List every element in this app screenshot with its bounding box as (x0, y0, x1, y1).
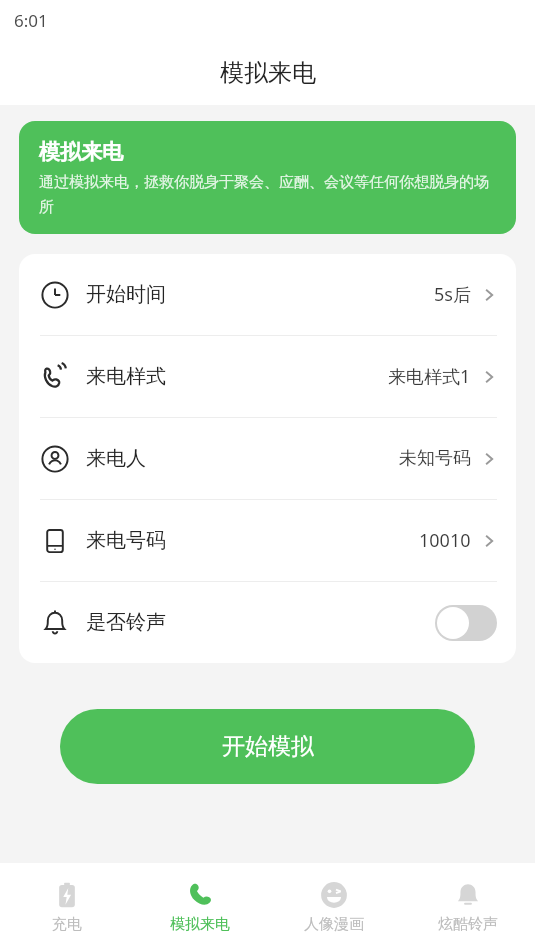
staticText: 炫酷铃声 (438, 915, 498, 934)
staticText: 人像漫画 (304, 915, 364, 934)
button[interactable]: 模拟来电 (19, 121, 516, 234)
button[interactable]: 来电人 (19, 418, 516, 499)
staticText: 是否铃声 (86, 610, 166, 635)
staticText: 5s后 (434, 282, 471, 307)
staticText: 10010 (419, 528, 471, 553)
staticText: 来电号码 (86, 528, 166, 553)
staticText: 开始模拟 (222, 732, 314, 761)
button[interactable]: 人像漫画 (267, 863, 401, 951)
staticText: 充电 (52, 915, 82, 934)
staticText: 来电人 (86, 446, 146, 471)
button[interactable]: 是否铃声 (19, 582, 516, 663)
staticText: 模拟来电 (220, 58, 316, 88)
staticText: 模拟来电 (170, 915, 230, 934)
button[interactable]: 来电号码 (19, 500, 516, 581)
staticText: 未知号码 (399, 447, 471, 470)
staticText: 通过模拟来电，拯救你脱身于聚会、应酬、会议等任何你想脱身的场所 (39, 173, 496, 216)
staticText: 开始时间 (86, 282, 166, 307)
button[interactable]: 来电样式 (19, 336, 516, 417)
staticText: 来电样式1 (388, 364, 471, 389)
button[interactable]: 开始时间 (19, 254, 516, 335)
button[interactable]: 开始模拟 (60, 709, 475, 784)
button[interactable]: 充电 (0, 863, 133, 951)
staticText: 6:01 (14, 9, 48, 32)
staticText: 模拟来电 (39, 139, 123, 165)
button[interactable]: Ringtone toggle (435, 605, 497, 641)
button[interactable]: 模拟来电 (133, 863, 267, 951)
button[interactable]: 炫酷铃声 (401, 863, 535, 951)
staticText: 来电样式 (86, 364, 166, 389)
